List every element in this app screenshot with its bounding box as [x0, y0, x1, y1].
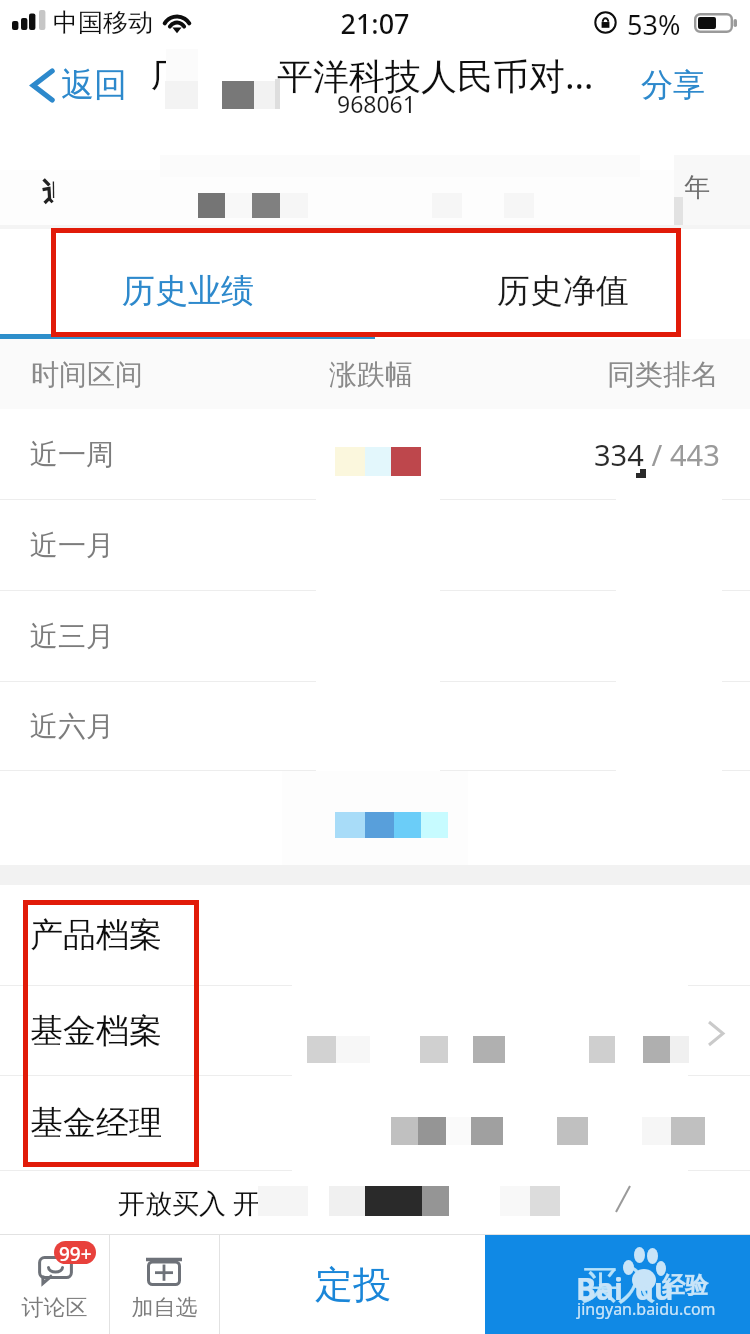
staticText: 21:07 [0, 5, 750, 42]
staticText: 讨论区 [0, 1294, 109, 1322]
staticText: 同类排名 [607, 357, 719, 392]
staticText: 334 [594, 435, 644, 474]
staticText: 968061 [337, 88, 416, 119]
staticText: 开放买入 开 [118, 1184, 261, 1221]
button[interactable]: 加自选 [110, 1235, 219, 1334]
staticText: 分享 [641, 65, 705, 105]
button[interactable]: 基金经理 [0, 1076, 750, 1171]
staticText: 中国移动 [53, 7, 153, 38]
button[interactable]: 近一月 [0, 500, 750, 591]
staticText: du [635, 1268, 674, 1309]
button[interactable]: 返回 [0, 52, 147, 118]
button[interactable]: 买入 [485, 1235, 750, 1334]
staticText: 近一月 [30, 528, 114, 563]
button[interactable]: 讨论区 [0, 1235, 109, 1334]
staticText: 经验 [662, 1271, 708, 1300]
staticText: / [644, 435, 670, 474]
button[interactable]: 近三月 [0, 591, 750, 682]
staticText: 443 [670, 435, 720, 474]
staticText: 历史业绩 [122, 270, 254, 312]
staticText: 基金档案 [30, 1010, 162, 1052]
staticText: 99+ [59, 1241, 92, 1264]
staticText: 产品档案 [30, 914, 162, 956]
staticText: 近一周 [30, 437, 114, 472]
staticText: 年 [684, 171, 710, 204]
button[interactable]: 近六月 [0, 682, 750, 771]
button[interactable]: 历史业绩 [0, 229, 375, 334]
staticText: jingyan.baidu.com [577, 1298, 716, 1320]
staticText: 涨跌幅 [329, 357, 413, 392]
staticText: 返回 [61, 64, 127, 106]
button[interactable]: 基金档案 [0, 986, 750, 1076]
staticText: 53% [627, 6, 681, 43]
button[interactable]: 近一周 [0, 409, 750, 500]
staticText: Bai [576, 1268, 623, 1309]
staticText: 买入 [580, 1261, 656, 1309]
staticText: 基金经理 [30, 1102, 162, 1144]
staticText: 广 [151, 50, 188, 97]
staticText: 定投 [315, 1261, 391, 1309]
button[interactable]: 定投 [220, 1235, 485, 1334]
staticText: 平洋科技人民币对… [277, 51, 594, 100]
staticText: 加自选 [110, 1294, 219, 1322]
staticText: 近三月 [30, 619, 114, 654]
button[interactable]: 分享 [621, 51, 750, 119]
staticText: 近六月 [30, 709, 114, 744]
button[interactable]: 历史净值 [375, 229, 750, 334]
button[interactable]: 产品档案 [0, 885, 750, 986]
staticText: 历史净值 [497, 270, 629, 312]
staticText: 时间区间 [31, 357, 143, 392]
